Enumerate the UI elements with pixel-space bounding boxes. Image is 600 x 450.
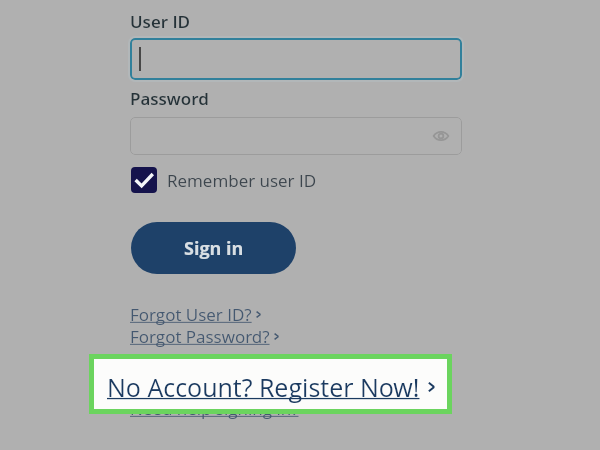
- button[interactable]: Remember user ID: [131, 167, 317, 193]
- button[interactable]: No Account? Register Now!: [94, 359, 447, 409]
- staticText: No Account? Register Now!: [107, 370, 420, 404]
- staticText: Sign in: [184, 236, 244, 261]
- button[interactable]: Need help signing in?: [130, 397, 308, 420]
- staticText: Forgot Password?: [130, 325, 270, 348]
- staticText: Password: [130, 87, 209, 110]
- staticText: User ID: [130, 10, 191, 33]
- staticText: Remember user ID: [167, 169, 317, 192]
- button[interactable]: Forgot User ID?: [130, 303, 261, 326]
- button[interactable]: Sign in: [131, 222, 296, 274]
- button[interactable]: Forgot Password?: [130, 325, 279, 348]
- button[interactable]: Show password: [429, 124, 453, 148]
- button[interactable]: [130, 38, 462, 80]
- staticText: Forgot User ID?: [130, 303, 252, 326]
- button[interactable]: Show password: [130, 117, 462, 155]
- staticText: Need help signing in?: [130, 397, 299, 420]
